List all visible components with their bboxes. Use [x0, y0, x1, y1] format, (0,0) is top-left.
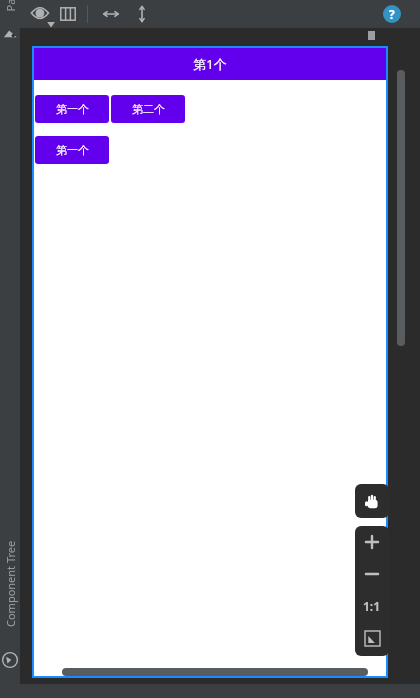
staticText: ?	[389, 6, 395, 22]
button[interactable]: Visibility options	[29, 3, 55, 25]
staticText: 1:1	[363, 598, 381, 614]
button[interactable]: Pan	[355, 484, 389, 518]
button[interactable]: 第1个	[34, 48, 386, 80]
staticText: 第二个	[132, 102, 165, 116]
button[interactable]: Component Tree	[2, 652, 18, 668]
button[interactable]: Vertical constraint	[132, 3, 152, 25]
button[interactable]: Horizontal constraint	[100, 4, 122, 24]
button[interactable]: 第一个	[35, 136, 109, 164]
button[interactable]: 第一个	[35, 95, 109, 123]
button[interactable]: Zoom to 100 percent	[355, 590, 389, 622]
staticText: 第1个	[193, 55, 227, 73]
staticText: 第一个	[56, 143, 89, 157]
button[interactable]: Layout mode	[58, 4, 78, 24]
button[interactable]: Palette	[2, 26, 18, 42]
button[interactable]: 第二个	[111, 95, 185, 123]
button[interactable]: Zoom out	[355, 558, 389, 590]
button[interactable]: Zoom in	[355, 526, 389, 558]
staticText: Pal	[2, 0, 17, 11]
button[interactable]: Help	[383, 5, 401, 23]
staticText: Component Tree	[3, 540, 18, 627]
staticText: 第一个	[56, 102, 89, 116]
button[interactable]: Zoom to fit screen	[355, 622, 389, 654]
